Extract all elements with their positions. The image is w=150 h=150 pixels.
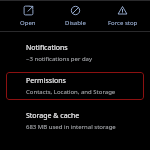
staticText: Storage & cache: [26, 111, 80, 121]
staticText: Force stop: [108, 19, 138, 27]
other: Open: [23, 5, 34, 16]
staticText: Permissions: [26, 76, 66, 86]
button[interactable]: Force stop: [99, 2, 146, 30]
staticText: Open: [20, 19, 36, 27]
staticText: Contacts, Location, and Storage: [26, 88, 116, 96]
other: Force stop: [117, 5, 128, 16]
button[interactable]: Permissions: [6, 72, 144, 100]
staticText: 683 MB used in internal storage: [26, 123, 116, 131]
staticText: Disable: [65, 19, 86, 27]
button[interactable]: Open: [4, 2, 52, 30]
button[interactable]: Disable: [52, 2, 99, 30]
button[interactable]: Storage & cache: [0, 106, 150, 136]
staticText: Notifications: [26, 43, 68, 53]
staticText: ~3 notifications per day: [26, 55, 93, 63]
button[interactable]: Notifications: [0, 38, 150, 68]
other: Disable: [70, 5, 81, 16]
